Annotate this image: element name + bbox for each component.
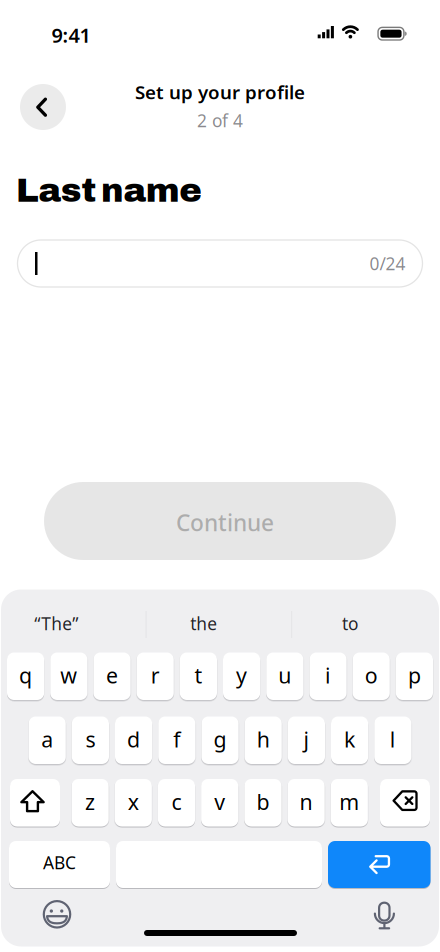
button[interactable]: Continue (44, 482, 396, 560)
button[interactable] (10, 779, 60, 826)
staticText: k (344, 725, 355, 753)
staticText: h (257, 725, 270, 753)
staticText: y (236, 661, 247, 689)
button[interactable]: z (71, 779, 109, 826)
staticText: q (19, 661, 32, 689)
staticText: ABC (43, 851, 76, 874)
staticText: a (41, 725, 53, 753)
staticText: w (60, 661, 77, 689)
staticText: n (300, 788, 313, 816)
staticText: g (213, 725, 226, 753)
button[interactable]: u (266, 652, 303, 700)
button[interactable]: b (244, 779, 281, 826)
button[interactable]: g (201, 716, 239, 764)
button[interactable]: d (115, 716, 152, 764)
button[interactable]: p (396, 652, 433, 700)
staticText: the (190, 612, 217, 635)
button[interactable]: r (137, 652, 174, 700)
staticText: r (151, 661, 160, 689)
staticText: u (278, 661, 291, 689)
staticText: j (303, 725, 309, 753)
staticText: d (127, 725, 140, 753)
staticText: to (342, 612, 358, 635)
button[interactable] (328, 841, 430, 888)
button[interactable]: m (331, 779, 368, 826)
button[interactable]: w (50, 652, 87, 700)
button[interactable]: o (353, 652, 390, 700)
button[interactable]: q (7, 652, 44, 700)
staticText: l (390, 725, 396, 753)
staticText: v (214, 788, 225, 816)
button[interactable] (361, 896, 407, 934)
button[interactable] (380, 779, 430, 826)
staticText: s (85, 725, 95, 753)
button[interactable]: e (93, 652, 131, 700)
button[interactable]: k (331, 716, 368, 764)
staticText: Set up your profile (135, 80, 305, 104)
staticText: o (365, 661, 378, 689)
button[interactable]: 0/24 (17, 240, 422, 287)
button[interactable]: f (158, 716, 195, 764)
button[interactable]: c (158, 779, 195, 826)
staticText: f (173, 725, 180, 753)
button[interactable]: ABC (9, 841, 110, 888)
button[interactable]: l (374, 716, 411, 764)
button[interactable]: i (309, 652, 347, 700)
button[interactable]: the (149, 603, 259, 643)
staticText: 2 of 4 (197, 109, 243, 132)
button[interactable]: v (201, 779, 238, 826)
button[interactable]: a (29, 716, 66, 764)
staticText: e (106, 661, 118, 689)
staticText: “The” (34, 612, 78, 635)
staticText: Last name (16, 172, 202, 209)
button[interactable]: x (115, 779, 152, 826)
staticText: m (339, 788, 359, 816)
staticText: z (85, 788, 95, 816)
button[interactable]: s (72, 716, 109, 764)
button[interactable]: n (287, 779, 325, 826)
staticText: c (171, 788, 181, 816)
button[interactable] (20, 84, 66, 130)
button[interactable]: h (245, 716, 282, 764)
button[interactable]: “The” (1, 603, 111, 643)
button[interactable]: t (180, 652, 217, 700)
staticText: 0/24 (369, 252, 405, 275)
staticText: i (325, 661, 331, 689)
button[interactable]: to (295, 603, 405, 643)
button[interactable]: j (288, 716, 325, 764)
staticText: p (408, 661, 421, 689)
button[interactable]: y (223, 652, 260, 700)
staticText: Continue (176, 507, 274, 537)
staticText: x (128, 788, 139, 816)
staticText: 9:41 (51, 22, 90, 48)
button[interactable] (34, 895, 80, 933)
staticText: t (194, 661, 202, 689)
staticText: b (256, 788, 269, 816)
